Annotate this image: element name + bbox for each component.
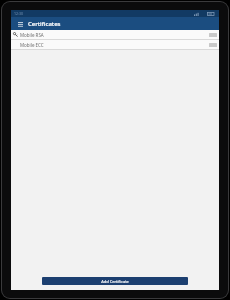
staticText: Certificates	[28, 20, 61, 28]
button[interactable]: Add Certificate	[42, 277, 188, 285]
staticText: Mobile ECC	[20, 42, 44, 48]
staticText: 12:30	[14, 11, 23, 16]
button[interactable]: Open navigation menu	[15, 19, 25, 29]
staticText: Mobile RSA	[20, 32, 44, 38]
button[interactable]: Mobile ECC	[11, 40, 219, 49]
button[interactable]: Mobile RSA	[11, 30, 219, 39]
staticText: Add Certificate	[101, 279, 129, 284]
